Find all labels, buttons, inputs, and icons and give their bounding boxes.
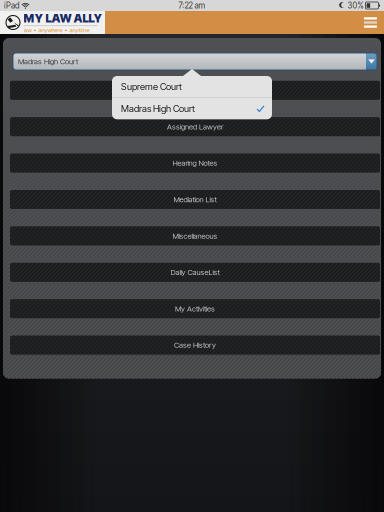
staticText: Miscellaneous xyxy=(172,231,217,240)
button[interactable]: Assigned Lawyer xyxy=(10,117,380,136)
button[interactable]: Miscellaneous xyxy=(10,226,380,245)
staticText: Madras High Court xyxy=(18,57,78,66)
button[interactable]: Menu xyxy=(359,12,382,33)
button[interactable]: Hearing Notes xyxy=(10,154,380,173)
staticText: Assigned Lawyer xyxy=(167,122,223,131)
staticText: 30% xyxy=(347,1,363,10)
staticText: My Activities xyxy=(175,304,215,313)
button[interactable]: Mediation List xyxy=(10,190,380,209)
staticText: Case Status xyxy=(175,86,214,95)
staticText: Madras High Court xyxy=(121,103,195,114)
button[interactable]: Case History xyxy=(10,336,380,355)
staticText: 7:22 am xyxy=(178,1,205,10)
staticText: MY LAW ALLY xyxy=(23,11,102,25)
staticText: Daily CauseList xyxy=(170,268,219,277)
staticText: Mediation List xyxy=(173,195,216,204)
staticText: law • anywhere • anytime xyxy=(23,27,89,34)
button[interactable]: Madras High Court xyxy=(112,98,272,119)
staticText: iPad xyxy=(4,1,19,10)
button[interactable]: Case Status xyxy=(10,81,380,100)
staticText: Supreme Court xyxy=(121,81,182,92)
staticText: Hearing Notes xyxy=(172,158,217,168)
button[interactable]: My Activities xyxy=(10,299,380,318)
staticText: Case History xyxy=(174,340,216,350)
button[interactable]: Daily CauseList xyxy=(10,263,380,282)
button[interactable]: Supreme Court xyxy=(112,76,272,97)
button[interactable]: Madras High Court xyxy=(13,53,377,70)
